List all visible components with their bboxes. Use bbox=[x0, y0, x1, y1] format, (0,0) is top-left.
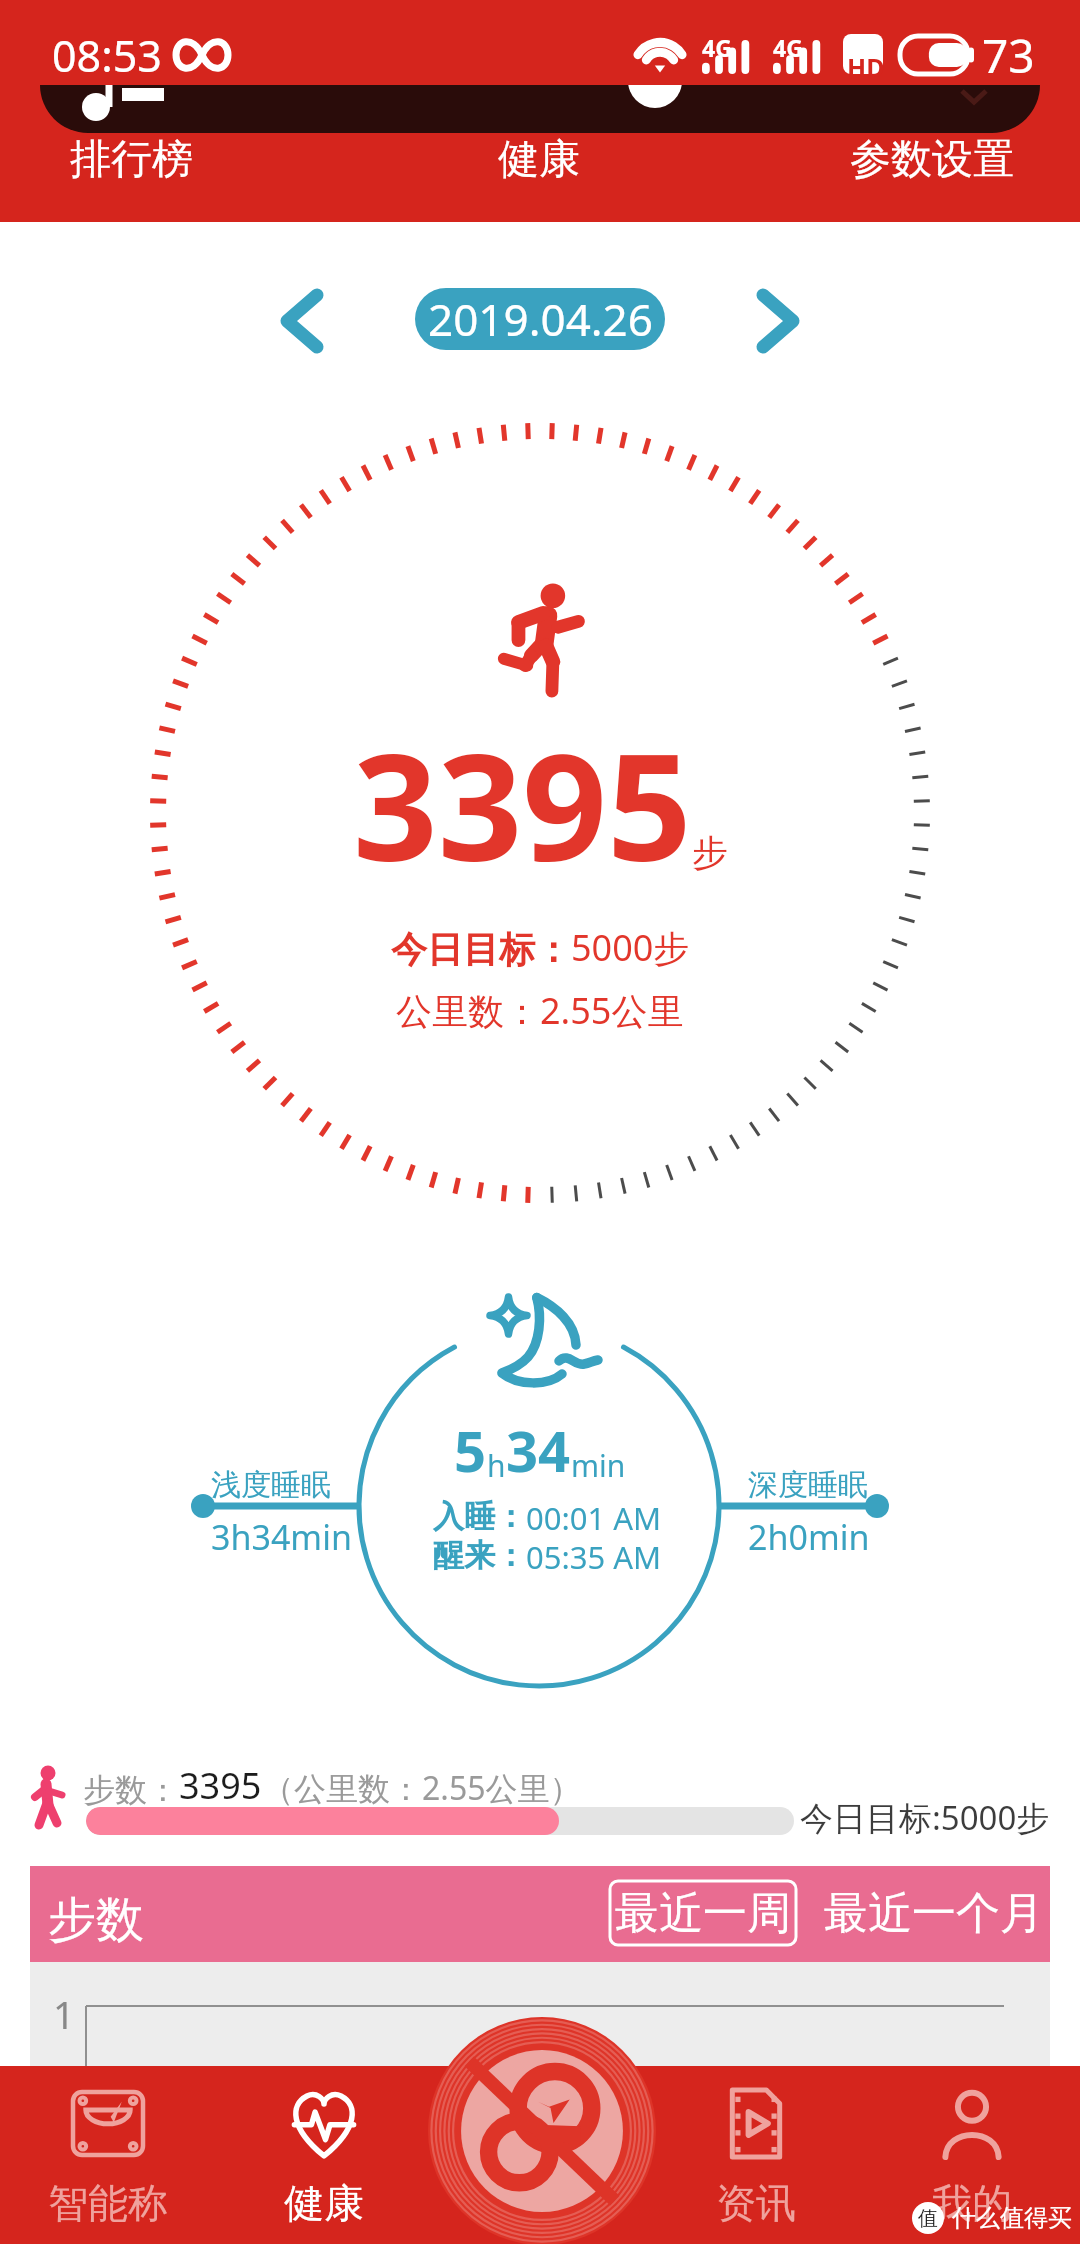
staticText: 步数 bbox=[48, 1890, 144, 1950]
staticText: 5000步 bbox=[571, 923, 690, 972]
staticText: 醒来： bbox=[433, 1536, 526, 1575]
button[interactable]: 最近一周 bbox=[610, 1881, 796, 1945]
staticText: 公里数：2.55公里 bbox=[396, 986, 684, 1035]
button[interactable]: Next day bbox=[742, 283, 818, 359]
staticText: 健康 bbox=[284, 2178, 364, 2228]
staticText: min bbox=[571, 1445, 626, 1486]
staticText: 2019.04.26 bbox=[428, 289, 653, 349]
staticText: 4G bbox=[702, 32, 732, 63]
button[interactable]: 参数设置 bbox=[834, 124, 1030, 196]
staticText: 最近一周 bbox=[615, 1886, 791, 1941]
staticText: 值 bbox=[918, 2206, 938, 2231]
button[interactable]: Scan bbox=[428, 2017, 656, 2244]
staticText: 2h0min bbox=[748, 1514, 870, 1560]
button[interactable]: 资讯 bbox=[648, 2066, 864, 2244]
staticText: 排行榜 bbox=[70, 134, 193, 186]
button[interactable]: Previous day bbox=[262, 283, 338, 359]
staticText: 步 bbox=[692, 830, 728, 875]
staticText: （公里数：2.55公里） bbox=[262, 1766, 582, 1810]
staticText: 5 bbox=[454, 1412, 487, 1488]
staticText: 4G bbox=[773, 32, 803, 63]
button[interactable]: 健康 bbox=[482, 124, 596, 196]
staticText: 浅度睡眠 bbox=[211, 1466, 331, 1504]
staticText: 08:53 bbox=[52, 26, 162, 85]
staticText: 今日目标:5000步 bbox=[800, 1795, 1050, 1840]
staticText: h bbox=[487, 1445, 506, 1486]
staticText: 资讯 bbox=[716, 2178, 796, 2228]
staticText: 今日目标： bbox=[391, 927, 571, 972]
staticText: 00:01 AM bbox=[526, 1497, 662, 1539]
staticText: 3h34min bbox=[211, 1514, 352, 1560]
staticText: 3395 bbox=[353, 703, 692, 905]
staticText: 深度睡眠 bbox=[748, 1466, 868, 1504]
button[interactable]: 最近一个月 bbox=[820, 1881, 1048, 1945]
staticText: 73 bbox=[982, 24, 1035, 87]
button[interactable]: 2019.04.26 bbox=[415, 288, 665, 350]
button[interactable]: 排行榜 bbox=[54, 124, 209, 196]
staticText: 智能称 bbox=[48, 2178, 168, 2228]
staticText: 参数设置 bbox=[850, 134, 1014, 186]
staticText: 我的 bbox=[932, 2178, 1012, 2228]
staticText: 34 bbox=[506, 1412, 571, 1488]
staticText: 05:35 AM bbox=[526, 1536, 662, 1578]
staticText: 最近一个月 bbox=[824, 1886, 1044, 1941]
button[interactable]: 智能称 bbox=[0, 2066, 216, 2244]
button[interactable]: 健康 bbox=[216, 2066, 432, 2244]
staticText: 入睡： bbox=[433, 1497, 526, 1536]
staticText: HD bbox=[847, 50, 885, 84]
staticText: 什么值得买 bbox=[952, 2203, 1072, 2233]
staticText: 健康 bbox=[498, 134, 580, 186]
staticText: 步数： bbox=[83, 1770, 179, 1810]
staticText: 3395 bbox=[179, 1761, 262, 1810]
button[interactable]: 我的 bbox=[864, 2066, 1080, 2244]
staticText: 1 bbox=[53, 1988, 75, 2040]
